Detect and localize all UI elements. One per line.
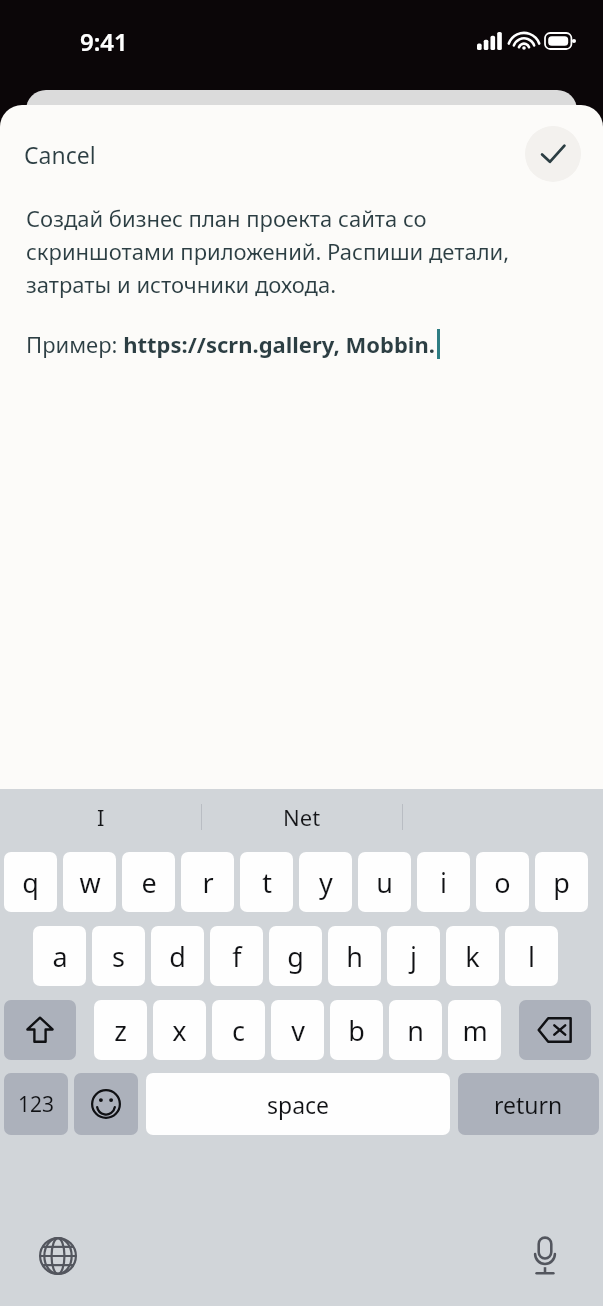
staticText: f [232, 938, 242, 975]
button[interactable]: s [92, 926, 145, 986]
button[interactable]: q [4, 852, 57, 912]
staticText: i [440, 864, 447, 901]
staticText: t [262, 864, 272, 901]
staticText: b [348, 1012, 365, 1049]
staticText: j [410, 938, 417, 975]
button[interactable]: b [330, 1000, 383, 1060]
button[interactable]: Dictation [517, 1228, 573, 1284]
staticText: l [528, 938, 535, 975]
staticText: e [141, 864, 157, 901]
button[interactable]: z [94, 1000, 147, 1060]
button[interactable]: I [0, 789, 201, 844]
button[interactable]: x [153, 1000, 206, 1060]
button[interactable]: e [122, 852, 175, 912]
button[interactable]: return [458, 1073, 599, 1135]
staticText: Пример: https://scrn.gallery, Mobbin. [26, 329, 435, 359]
staticText: Создай бизнес план проекта сайта со скри… [26, 203, 577, 299]
button[interactable]: y [299, 852, 352, 912]
button[interactable]: i [417, 852, 470, 912]
button[interactable]: l [505, 926, 558, 986]
staticText: v [291, 1012, 305, 1049]
button[interactable]: t [240, 852, 293, 912]
button[interactable]: r [181, 852, 234, 912]
button[interactable]: a [33, 926, 86, 986]
staticText: m [462, 1012, 488, 1049]
button[interactable]: space [146, 1073, 450, 1135]
button[interactable]: w [63, 852, 116, 912]
staticText: I [97, 802, 105, 832]
button[interactable]: p [535, 852, 588, 912]
button[interactable]: Net [202, 789, 402, 844]
staticText: u [376, 864, 393, 901]
button[interactable]: h [328, 926, 381, 986]
staticText: q [22, 864, 39, 901]
button[interactable]: c [212, 1000, 265, 1060]
staticText: c [232, 1012, 245, 1049]
button[interactable]: Change keyboard language [30, 1228, 86, 1284]
staticText: Net [283, 802, 321, 832]
button[interactable]: Emoji [74, 1073, 138, 1135]
staticText: z [114, 1012, 127, 1049]
staticText: p [553, 864, 570, 901]
staticText: x [172, 1012, 187, 1049]
staticText: h [346, 938, 363, 975]
staticText: d [169, 938, 186, 975]
staticText: 123 [18, 1090, 55, 1119]
button[interactable]: j [387, 926, 440, 986]
staticText: s [112, 938, 125, 975]
staticText: n [407, 1012, 424, 1049]
button[interactable]: Shift [4, 1000, 76, 1060]
button[interactable]: n [389, 1000, 442, 1060]
staticText: k [465, 938, 480, 975]
button[interactable]: k [446, 926, 499, 986]
staticText: return [494, 1089, 563, 1120]
button[interactable]: u [358, 852, 411, 912]
button[interactable]: Confirm [525, 126, 581, 182]
button[interactable]: Cancel [10, 131, 110, 178]
button[interactable]: 123 [4, 1073, 68, 1135]
staticText: space [267, 1089, 330, 1120]
staticText: o [494, 864, 511, 901]
button[interactable]: Backspace [519, 1000, 591, 1060]
button[interactable]: d [151, 926, 204, 986]
button[interactable]: g [269, 926, 322, 986]
staticText: a [52, 938, 68, 975]
button[interactable]: f [210, 926, 263, 986]
staticText: w [79, 864, 101, 901]
button[interactable]: o [476, 852, 529, 912]
staticText: 9:41 [80, 25, 128, 58]
button[interactable]: m [448, 1000, 501, 1060]
staticText: y [319, 864, 333, 901]
staticText: Cancel [24, 139, 96, 170]
staticText: r [202, 864, 214, 901]
button[interactable]: v [271, 1000, 324, 1060]
staticText: g [287, 938, 304, 975]
